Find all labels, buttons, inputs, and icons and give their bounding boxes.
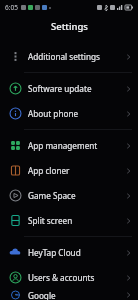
button[interactable]: Software update xyxy=(0,76,138,101)
other: HeyTap Cloud xyxy=(9,246,22,259)
button[interactable]: Users & accounts xyxy=(0,265,138,290)
button[interactable]: Google xyxy=(0,290,138,300)
staticText: App management xyxy=(28,140,98,151)
button[interactable]: App management xyxy=(0,133,138,158)
staticText: App cloner xyxy=(28,165,70,176)
staticText: Additional settings xyxy=(28,51,100,62)
button[interactable]: HeyTap Cloud xyxy=(0,240,138,265)
other: Google xyxy=(9,290,22,300)
staticText: Game Space xyxy=(28,190,76,201)
other: App cloner xyxy=(9,164,22,177)
button[interactable]: App cloner xyxy=(0,158,138,183)
button[interactable]: Split screen xyxy=(0,208,138,233)
staticText: 6:05 xyxy=(5,3,18,12)
staticText: Split screen xyxy=(28,215,73,226)
button[interactable]: About phone xyxy=(0,101,138,126)
button[interactable]: Additional settings xyxy=(0,44,138,69)
other: About phone xyxy=(9,107,22,120)
other: Software update xyxy=(9,82,22,95)
staticText: About phone xyxy=(28,108,79,119)
staticText: Settings xyxy=(51,20,88,33)
staticText: Google xyxy=(28,290,56,300)
staticText: Users & accounts xyxy=(28,272,95,283)
button[interactable]: Game Space xyxy=(0,183,138,208)
staticText: Software update xyxy=(28,83,92,94)
other: Split screen xyxy=(9,214,22,227)
other: Game Space xyxy=(9,189,22,202)
other: Additional settings xyxy=(9,50,22,63)
other: App management xyxy=(9,139,22,152)
staticText: HeyTap Cloud xyxy=(28,247,81,258)
other: Users & accounts xyxy=(9,271,22,284)
